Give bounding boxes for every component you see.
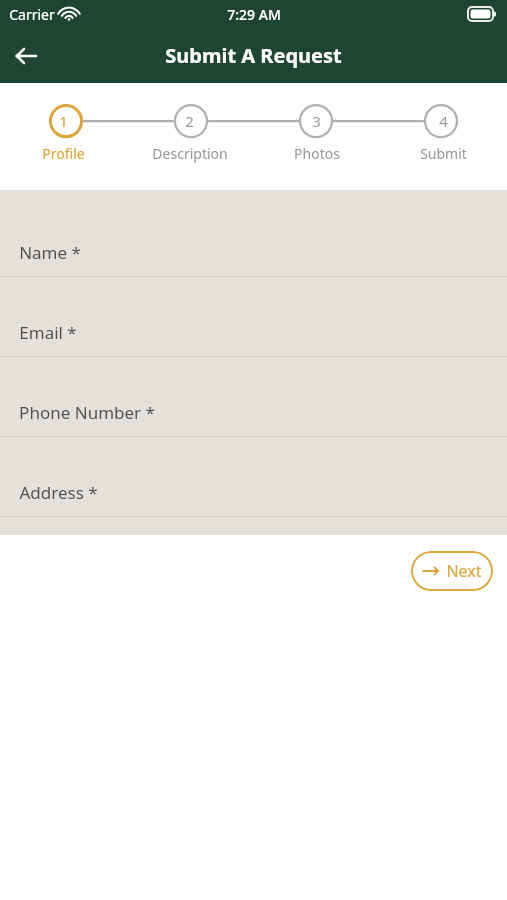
staticText: 2 bbox=[185, 111, 194, 131]
staticText: Carrier bbox=[9, 5, 55, 24]
staticText: Profile bbox=[42, 144, 85, 163]
button[interactable]: Back bbox=[6, 36, 46, 76]
button[interactable]: Submit bbox=[380, 144, 507, 163]
staticText: Name * bbox=[19, 241, 81, 264]
staticText: 1 bbox=[59, 111, 68, 131]
staticText: 7:29 AM bbox=[227, 5, 281, 24]
staticText: Phone Number * bbox=[19, 401, 155, 424]
button[interactable]: Phone Number * bbox=[0, 357, 507, 437]
staticText: Description bbox=[152, 144, 228, 163]
staticText: Photos bbox=[294, 144, 340, 163]
button[interactable]: Address * bbox=[0, 437, 507, 517]
staticText: Email * bbox=[19, 321, 77, 344]
staticText: 4 bbox=[439, 111, 448, 131]
button[interactable]: Email * bbox=[0, 277, 507, 357]
staticText: Address * bbox=[19, 481, 98, 504]
button[interactable]: Name * bbox=[0, 190, 507, 277]
staticText: Submit A Request bbox=[165, 42, 342, 69]
button[interactable]: Description bbox=[126, 144, 253, 163]
staticText: Submit bbox=[420, 144, 467, 163]
button[interactable]: Next bbox=[411, 551, 493, 591]
button[interactable]: Profile bbox=[0, 144, 126, 163]
button[interactable]: Photos bbox=[253, 144, 380, 163]
staticText: 3 bbox=[312, 111, 321, 131]
staticText: Next bbox=[446, 560, 482, 582]
